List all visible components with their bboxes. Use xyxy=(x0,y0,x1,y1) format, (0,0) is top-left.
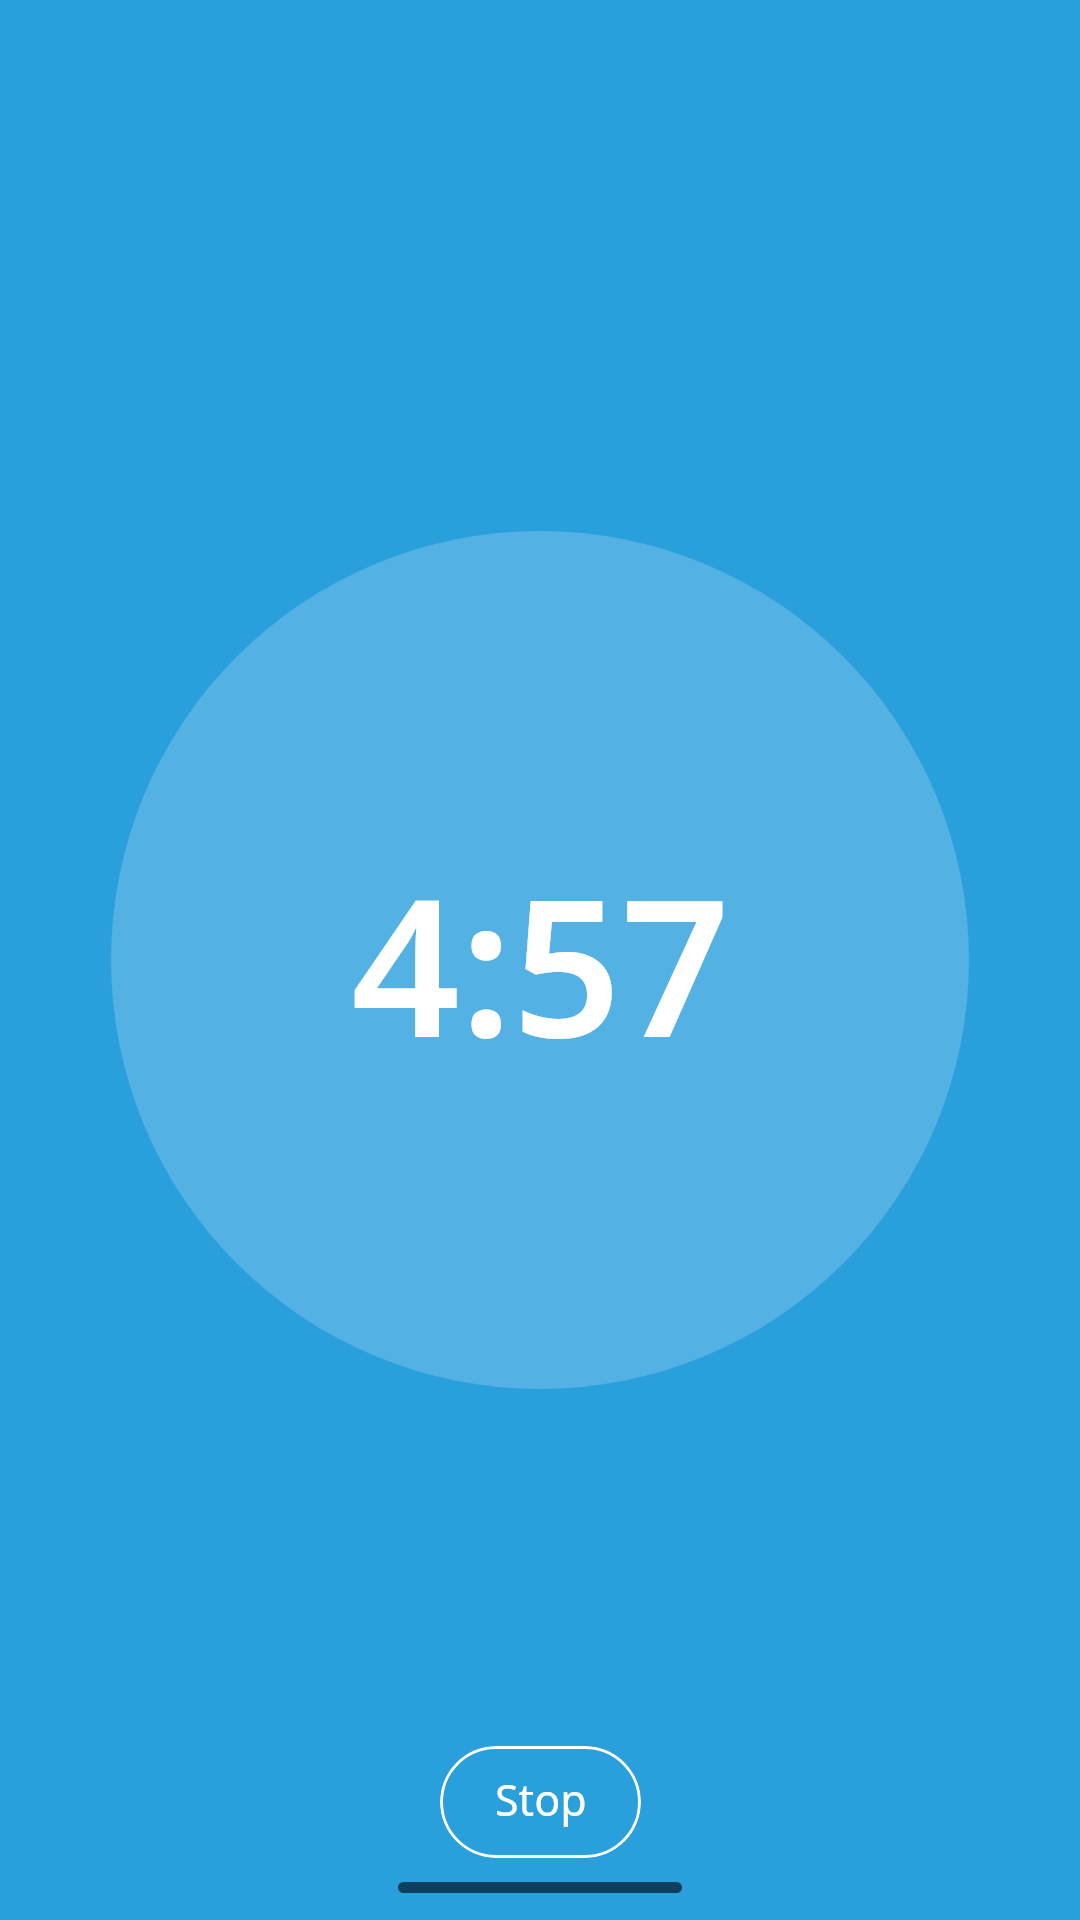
button[interactable]: Timer, 4 minutes 57 seconds remaining xyxy=(111,531,969,1389)
button[interactable]: Stop xyxy=(440,1746,641,1858)
staticText: 4:57 xyxy=(351,834,730,1093)
staticText: Stop xyxy=(495,1770,587,1829)
